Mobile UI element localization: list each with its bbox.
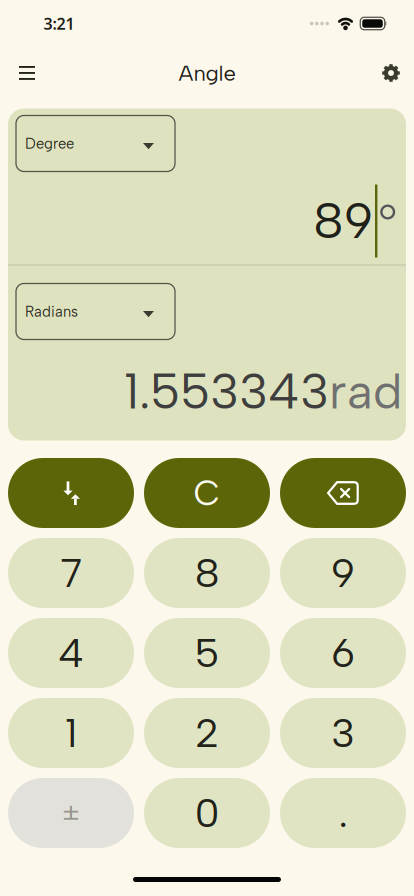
button[interactable]: 0 [144, 778, 270, 848]
button[interactable]: Radians [16, 283, 175, 339]
staticText: ± [60, 796, 81, 830]
button[interactable]: 1 [8, 698, 134, 768]
button[interactable]: Delete [280, 458, 406, 528]
staticText: 2 [195, 709, 219, 757]
button[interactable]: Plus minus [8, 778, 134, 848]
staticText: Degree [25, 135, 74, 152]
button[interactable]: 5 [144, 618, 270, 688]
staticText: . [338, 789, 347, 837]
button[interactable]: 7 [8, 538, 134, 608]
staticText: 0 [194, 789, 219, 837]
staticText: 5 [194, 629, 219, 677]
staticText: 1 [65, 709, 77, 757]
staticText: 6 [331, 629, 355, 677]
staticText: 3:21 [43, 13, 74, 34]
staticText: 89 [313, 192, 373, 250]
button[interactable]: C [144, 458, 270, 528]
staticText: 1.553343 [124, 362, 329, 421]
button[interactable]: 4 [8, 618, 134, 688]
button[interactable]: 9 [280, 538, 406, 608]
button[interactable]: Degree [16, 115, 175, 171]
button[interactable]: 8 [144, 538, 270, 608]
staticText: Radians [25, 303, 78, 320]
staticText: 9 [331, 549, 355, 597]
staticText: 4 [58, 629, 84, 677]
staticText: 3 [331, 709, 355, 757]
button[interactable]: Menu [0, 66, 35, 80]
staticText: C [193, 472, 220, 514]
staticText: Angle [178, 60, 235, 86]
staticText: rad [329, 362, 402, 421]
button[interactable]: . [280, 778, 406, 848]
button[interactable]: 2 [144, 698, 270, 768]
staticText: 7 [60, 549, 82, 597]
button[interactable]: 3 [280, 698, 406, 768]
button[interactable]: Swap units [8, 458, 134, 528]
button[interactable]: Settings [381, 63, 414, 83]
button[interactable]: 6 [280, 618, 406, 688]
staticText: 8 [194, 549, 219, 597]
